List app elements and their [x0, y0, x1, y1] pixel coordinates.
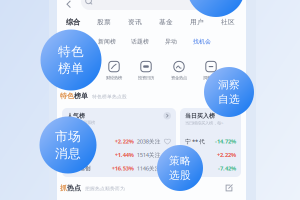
- button[interactable]: 基金: [159, 18, 173, 26]
- staticText: 中际旭创: [67, 165, 91, 172]
- button[interactable]: 找机会: [193, 38, 211, 45]
- button[interactable]: 资金热点: [171, 61, 187, 80]
- staticText: +16.53%: [112, 164, 134, 172]
- staticText: -14.72%: [215, 137, 236, 145]
- button[interactable]: 中际旭创: [67, 161, 171, 175]
- staticText: 洞察自选: [203, 75, 219, 80]
- staticText: 特色: [60, 92, 74, 100]
- staticText: 资讯: [128, 18, 142, 26]
- staticText: 消息: [55, 145, 81, 161]
- staticText: * 台: [185, 164, 195, 172]
- staticText: 把握热点顺势而为: [85, 186, 125, 192]
- button[interactable]: 榜单: [71, 38, 83, 45]
- button[interactable]: 综合: [66, 17, 80, 27]
- staticText: 用户关注股票榜: [67, 120, 95, 125]
- staticText: 基金: [159, 18, 173, 26]
- button[interactable]: 寒武纪: [67, 148, 171, 161]
- staticText: 2038关注: [137, 137, 161, 145]
- button[interactable]: 资讯: [128, 18, 142, 26]
- button[interactable]: Back: [66, 0, 72, 9]
- button[interactable]: 财经热榜: [106, 61, 122, 80]
- staticText: 中科曙光: [67, 138, 91, 145]
- staticText: +1.44%: [115, 151, 134, 159]
- staticText: 抓: [60, 184, 67, 192]
- button[interactable]: 中科曙光: [67, 134, 171, 148]
- staticText: 找机会: [193, 38, 211, 45]
- staticText: 选股: [169, 168, 191, 182]
- staticText: 自选: [218, 92, 240, 106]
- button[interactable]: 社区: [221, 18, 235, 26]
- staticText: 社区: [221, 18, 235, 26]
- button[interactable]: Search: [81, 0, 241, 10]
- staticText: 寒武纪: [67, 151, 85, 158]
- staticText: 策略: [169, 154, 191, 167]
- button[interactable]: 新闻榜: [98, 38, 116, 45]
- staticText: 1514关注: [137, 151, 161, 159]
- button[interactable]: Share: [225, 184, 233, 192]
- staticText: ** 富: [185, 151, 198, 159]
- staticText: 话题榜: [131, 38, 149, 45]
- staticText: 榜单: [58, 60, 84, 76]
- staticText: 人气榜: [67, 112, 85, 119]
- button[interactable]: 股票: [97, 18, 111, 26]
- staticText: 市场: [55, 128, 81, 144]
- staticText: 特色: [58, 43, 84, 59]
- staticText: 异动: [165, 38, 177, 45]
- staticText: 当日模拟买入榜，每>: [185, 120, 223, 126]
- staticText: 当日买入榜: [185, 112, 215, 119]
- button[interactable]: 用户: [190, 18, 204, 26]
- button[interactable]: 异动: [165, 38, 177, 45]
- staticText: 股票: [97, 18, 111, 26]
- staticText: +2.22%: [115, 137, 134, 145]
- staticText: 新闻榜: [98, 38, 116, 45]
- staticText: 资金热点: [171, 75, 187, 80]
- staticText: 榜单: [71, 38, 83, 45]
- staticText: 综合: [66, 17, 80, 27]
- staticText: 洞察: [218, 78, 240, 91]
- button[interactable]: 话题榜: [131, 38, 149, 45]
- staticText: 1146关注: [137, 164, 161, 172]
- staticText: 热点: [67, 184, 81, 192]
- staticText: 用户: [190, 18, 204, 26]
- staticText: +2.22%: [217, 151, 236, 159]
- button[interactable]: * 台: [185, 161, 236, 175]
- staticText: 宁 ** 代: [185, 137, 205, 145]
- staticText: 榜单: [74, 92, 88, 100]
- button[interactable]: 洞察自选: [203, 61, 219, 80]
- button[interactable]: 投资日历: [138, 61, 154, 80]
- staticText: 特色榜单热点股: [92, 94, 127, 100]
- button[interactable]: ** 富: [185, 148, 236, 161]
- staticText: 投资日历: [138, 75, 154, 80]
- button[interactable]: 宁 ** 代: [185, 134, 236, 148]
- staticText: 财经热榜: [106, 75, 122, 80]
- staticText: -7.42%: [218, 164, 236, 172]
